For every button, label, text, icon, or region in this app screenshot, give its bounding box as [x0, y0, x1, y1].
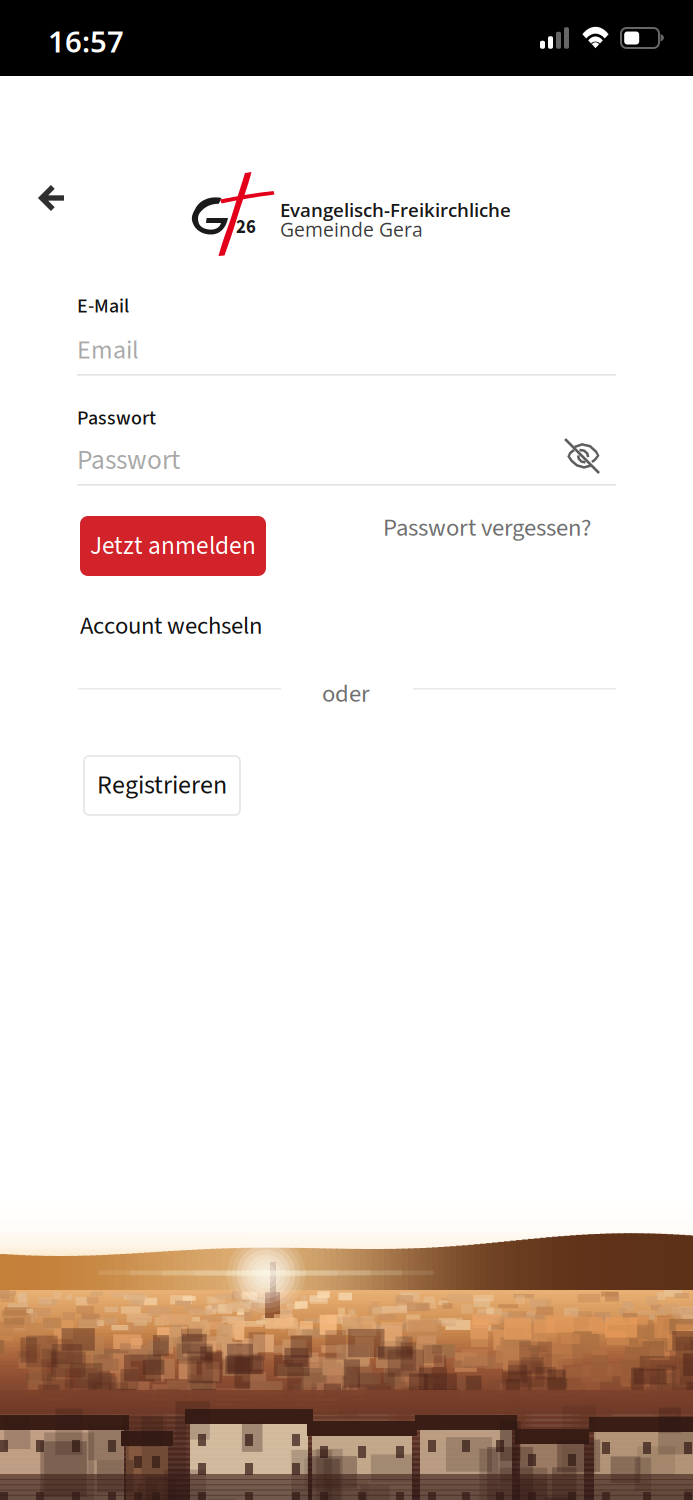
- staticText: Jetzt anmelden: [90, 528, 256, 564]
- button[interactable]: Registrieren: [84, 756, 240, 815]
- staticText: Passwort: [77, 441, 180, 480]
- staticText: E-Mail: [77, 292, 129, 320]
- staticText: Passwort vergessen?: [383, 510, 591, 545]
- staticText: Evangelisch-Freikirchliche: [280, 197, 511, 222]
- staticText: Email: [77, 332, 139, 369]
- button[interactable]: Back: [21, 168, 81, 228]
- button[interactable]: Account wechseln: [80, 609, 270, 643]
- staticText: Passwort: [77, 404, 156, 432]
- button[interactable]: Passwort vergessen?: [382, 508, 592, 548]
- staticText: 26: [236, 214, 256, 241]
- staticText: Account wechseln: [80, 608, 262, 643]
- button[interactable]: Show password: [563, 437, 603, 475]
- staticText: oder: [322, 676, 370, 711]
- button[interactable]: Jetzt anmelden: [80, 516, 266, 576]
- staticText: Registrieren: [97, 767, 227, 804]
- staticText: Gemeinde Gera: [280, 216, 423, 242]
- staticText: 16:57: [48, 21, 124, 61]
